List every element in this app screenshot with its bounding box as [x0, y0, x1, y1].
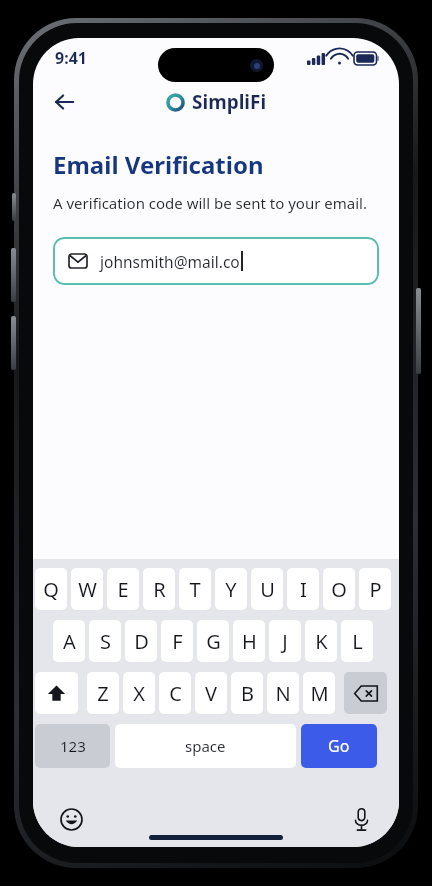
button[interactable]: H — [233, 620, 265, 662]
button[interactable]: T — [179, 568, 211, 610]
button[interactable]: G — [197, 620, 229, 662]
button[interactable]: E — [107, 568, 139, 610]
staticText: L — [352, 628, 363, 655]
staticText: X — [133, 680, 145, 707]
button[interactable]: Back — [43, 81, 85, 123]
staticText: A — [63, 628, 76, 655]
button[interactable]: X — [123, 672, 155, 714]
staticText: Q — [43, 576, 59, 603]
button[interactable]: R — [143, 568, 175, 610]
staticText: E — [117, 576, 129, 603]
staticText: F — [172, 628, 183, 655]
staticText: Go — [328, 735, 350, 757]
button[interactable]: C — [159, 672, 191, 714]
button[interactable]: A — [53, 620, 85, 662]
button[interactable]: Go — [301, 724, 377, 768]
staticText: R — [153, 576, 166, 603]
staticText: O — [331, 576, 347, 603]
staticText: H — [242, 628, 257, 655]
button[interactable]: space — [115, 724, 296, 768]
staticText: C — [169, 680, 182, 707]
staticText: Z — [97, 680, 109, 707]
staticText: N — [275, 680, 291, 707]
button[interactable]: Voice input — [345, 803, 377, 835]
button[interactable]: L — [341, 620, 373, 662]
staticText: I — [300, 576, 307, 603]
staticText: Y — [225, 576, 237, 603]
staticText: space — [185, 736, 226, 756]
button[interactable]: S — [89, 620, 121, 662]
button[interactable]: D — [125, 620, 157, 662]
button[interactable]: Q — [35, 568, 67, 610]
button[interactable]: Y — [215, 568, 247, 610]
button[interactable]: M — [303, 672, 335, 714]
staticText: W — [78, 576, 97, 603]
staticText: 9:41 — [55, 47, 87, 69]
staticText: SimpliFi — [192, 89, 267, 115]
staticText: V — [205, 680, 217, 707]
button[interactable]: F — [161, 620, 193, 662]
button[interactable]: B — [231, 672, 263, 714]
button[interactable]: O — [323, 568, 355, 610]
button[interactable]: I — [287, 568, 319, 610]
staticText: 123 — [60, 736, 86, 756]
button[interactable]: P — [359, 568, 391, 610]
staticText: D — [134, 628, 149, 655]
button[interactable]: Emoji — [55, 803, 87, 835]
button[interactable]: V — [195, 672, 227, 714]
button[interactable]: johnsmith@mail.co — [53, 237, 379, 285]
button[interactable]: 123 — [35, 724, 110, 768]
staticText: P — [369, 576, 382, 603]
staticText: J — [282, 628, 288, 655]
button[interactable]: Z — [87, 672, 119, 714]
staticText: Email Verification — [53, 148, 264, 181]
button[interactable]: U — [251, 568, 283, 610]
button[interactable]: W — [71, 568, 103, 610]
staticText: U — [260, 576, 275, 603]
staticText: T — [189, 576, 201, 603]
button[interactable]: J — [269, 620, 301, 662]
staticText: G — [206, 628, 221, 655]
staticText: K — [315, 628, 328, 655]
button[interactable]: N — [267, 672, 299, 714]
button[interactable]: K — [305, 620, 337, 662]
staticText: M — [310, 680, 329, 707]
staticText: S — [100, 628, 111, 655]
button[interactable]: Shift — [35, 672, 78, 714]
staticText: johnsmith@mail.co — [100, 251, 240, 272]
staticText: B — [241, 680, 254, 707]
button[interactable]: Backspace — [344, 672, 387, 714]
staticText: A verification code will be sent to your… — [53, 193, 367, 213]
